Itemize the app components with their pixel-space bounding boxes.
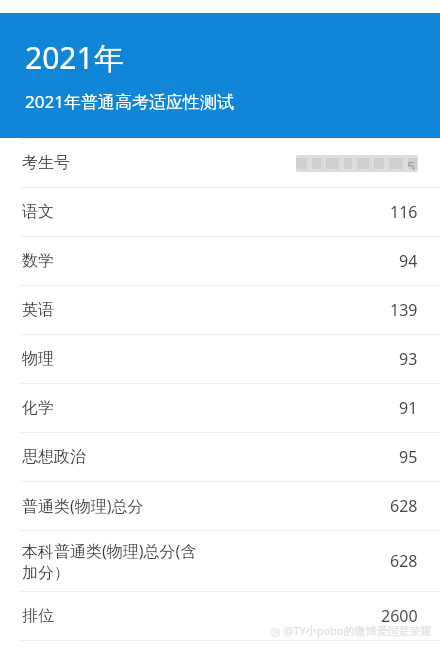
staticText: 628 (390, 495, 418, 517)
staticText: 排位 (22, 606, 54, 626)
staticText: 考生号 (22, 153, 70, 173)
button[interactable]: 英语 (0, 286, 440, 334)
staticText: 2600 (381, 605, 418, 627)
staticText: 思想政治 (22, 447, 86, 467)
staticText: 116 (390, 201, 418, 223)
staticText: 2021年普通高考适应性测试 (25, 90, 234, 113)
button[interactable]: 数学 (0, 237, 440, 285)
button[interactable]: 化学 (0, 384, 440, 432)
button[interactable]: 排位 (0, 592, 440, 640)
staticText: 91 (399, 397, 418, 419)
staticText: 本科普通类(物理)总分(含 加分） (22, 540, 197, 582)
staticText: 95 (399, 446, 418, 468)
staticText: 628 (390, 550, 418, 572)
button[interactable]: 考生号 (0, 139, 440, 187)
staticText: 94 (399, 250, 418, 272)
staticText: 5 (407, 157, 416, 170)
button[interactable]: 普通类(物理)总分 (0, 482, 440, 530)
staticText: 2021年 (25, 37, 124, 78)
staticText: ◎ @TY小pobo的微博爱国是荣耀 (271, 623, 432, 638)
staticText: 语文 (22, 202, 54, 222)
staticText: 数学 (22, 251, 54, 271)
staticText: 普通类(物理)总分 (22, 495, 144, 517)
staticText: 英语 (22, 300, 54, 320)
button[interactable]: 本科普通类(物理)总分(含 加分） (0, 531, 440, 591)
staticText: 物理 (22, 349, 54, 369)
staticText: 93 (399, 348, 418, 370)
staticText: 化学 (22, 398, 54, 418)
button[interactable]: 语文 (0, 188, 440, 236)
staticText: 139 (390, 299, 418, 321)
button[interactable]: 物理 (0, 335, 440, 383)
button[interactable]: 思想政治 (0, 433, 440, 481)
